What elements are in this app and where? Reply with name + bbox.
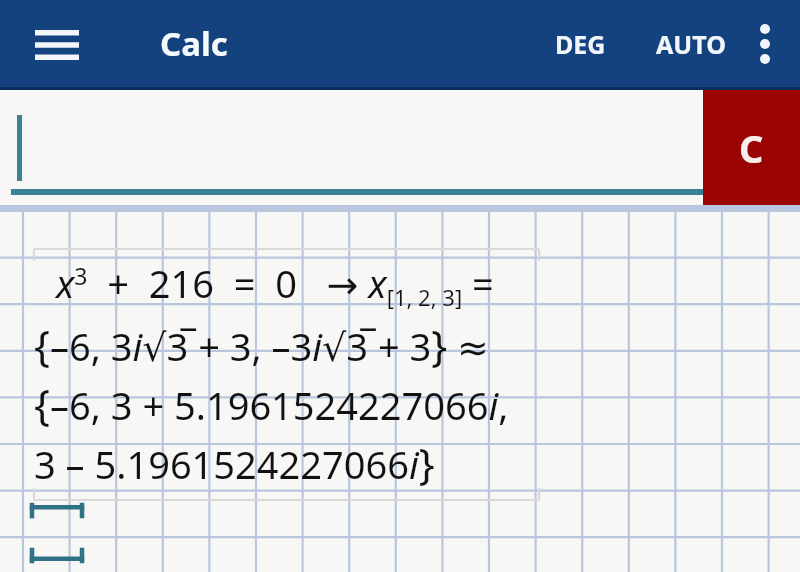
button[interactable]: Open navigation menu [26, 14, 88, 76]
staticText: Calc [160, 21, 228, 66]
button[interactable]: DEG [547, 9, 614, 79]
button[interactable]: AUTO [648, 9, 734, 79]
button[interactable]: C [703, 90, 800, 205]
staticText: C [739, 122, 764, 174]
staticText: 3 – 5.1961524227066i} [34, 434, 435, 491]
button[interactable] [0, 90, 703, 205]
button[interactable]: More options [734, 4, 796, 84]
staticText: {–6, 3i√3̅ + 3, –3i√3̅ + 3} ≈ [34, 316, 489, 373]
button[interactable]: x3 + 216 = 0 → x[1, 2, 3] = [34, 257, 539, 491]
staticText: AUTO [656, 27, 726, 61]
staticText: x3 + 216 = 0 → x[1, 2, 3] = [56, 257, 494, 312]
staticText: DEG [555, 27, 606, 61]
staticText: {–6, 3 + 5.1961524227066i, [34, 375, 509, 432]
